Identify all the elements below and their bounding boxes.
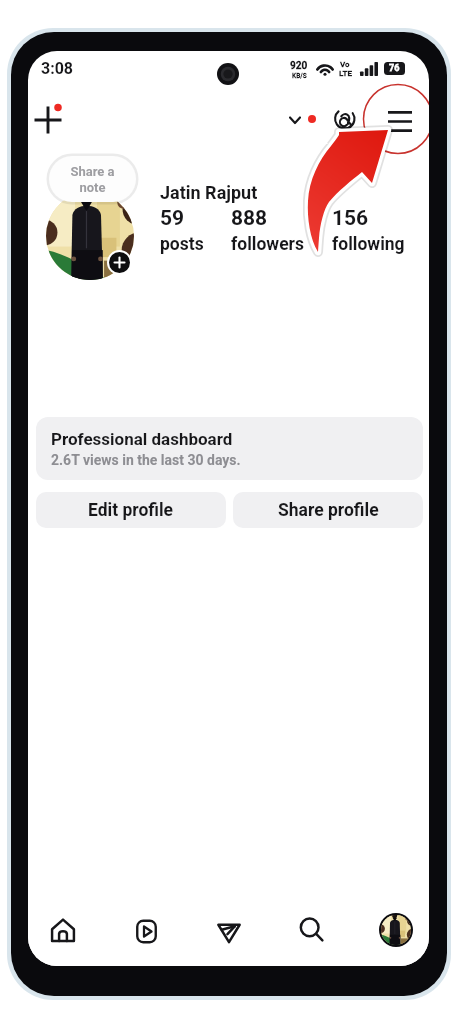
button[interactable]: Search (289, 907, 335, 953)
staticText: 2.6T views in the last 30 days. (51, 452, 241, 468)
staticText: 3:08 (41, 59, 74, 78)
staticText: Professional dashboard (51, 429, 233, 449)
button[interactable]: Home (40, 907, 86, 953)
staticText: Jatin Rajput (160, 182, 258, 203)
button[interactable]: Create new (30, 101, 66, 137)
button[interactable]: Share profile (233, 492, 423, 528)
staticText: following (332, 234, 405, 255)
button[interactable]: Menu (383, 104, 417, 138)
staticText: 76 (389, 63, 400, 74)
staticText: KB/S (292, 72, 307, 80)
button[interactable]: Add to story (109, 252, 130, 273)
button[interactable]: Edit profile (36, 492, 226, 528)
button[interactable]: Switch account (283, 108, 306, 131)
button[interactable]: 888 (231, 206, 304, 255)
button[interactable]: Threads (330, 104, 360, 134)
button[interactable]: Professional dashboard (36, 417, 423, 480)
button[interactable]: 156 (332, 206, 405, 255)
staticText: 156 (332, 206, 369, 231)
staticText: posts (160, 234, 204, 255)
button[interactable]: Share a note (49, 156, 136, 202)
button[interactable]: Reels (123, 908, 169, 954)
staticText: Share a note (70, 164, 115, 195)
staticText: Share profile (278, 500, 379, 521)
staticText: Edit profile (88, 500, 174, 521)
staticText: LTE (339, 69, 352, 78)
staticText: followers (231, 234, 304, 255)
staticText: 888 (231, 206, 268, 231)
button[interactable]: Profile (374, 908, 418, 952)
staticText: 920 (290, 60, 308, 72)
staticText: Vo (340, 60, 350, 69)
button[interactable]: Messages (206, 908, 252, 954)
staticText: 59 (160, 206, 185, 231)
button[interactable]: 59 (160, 206, 204, 255)
